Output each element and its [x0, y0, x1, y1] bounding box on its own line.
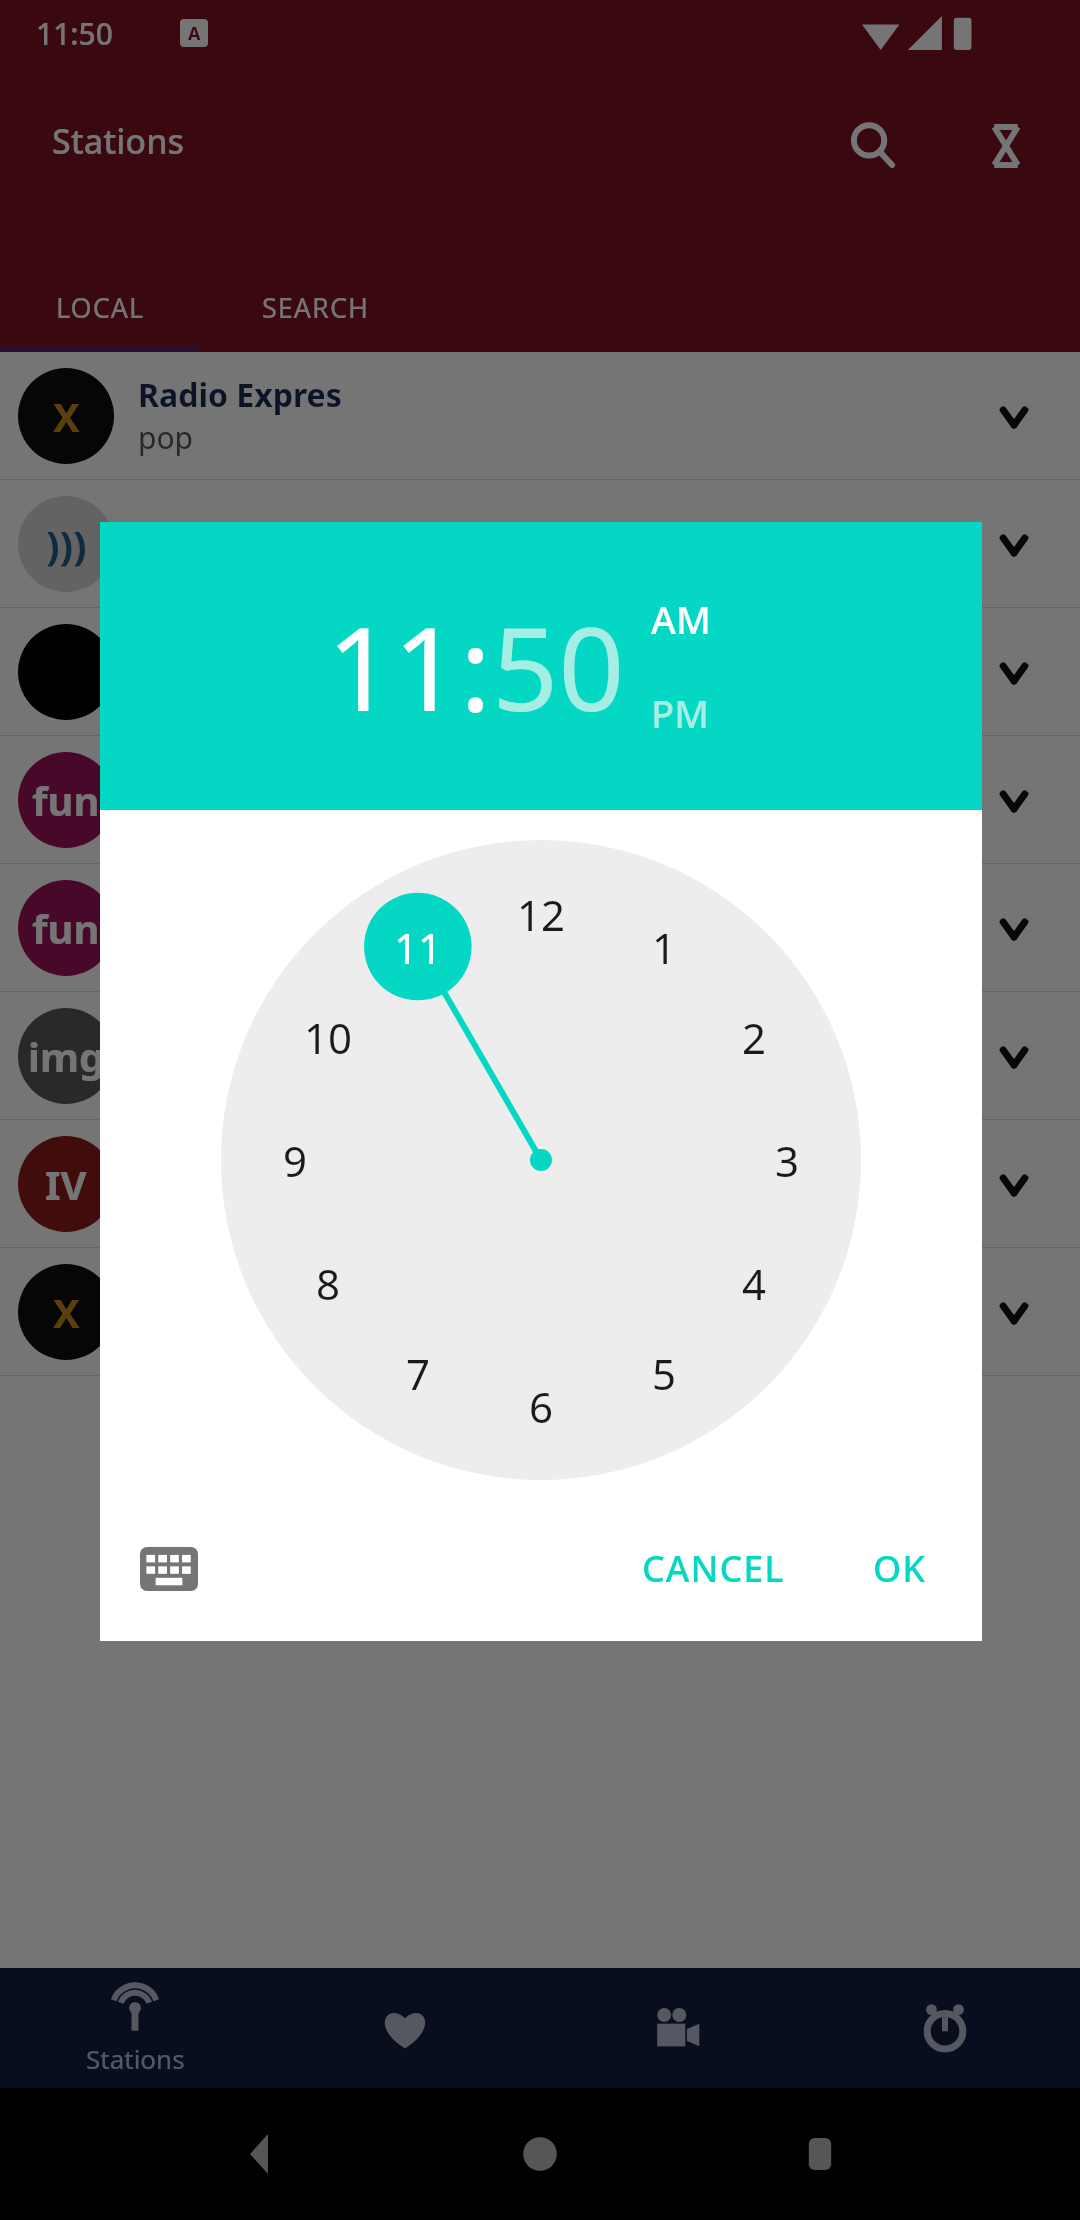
button[interactable] — [0, 608, 1080, 735]
staticText: ))) — [46, 517, 87, 571]
staticText: 4 — [742, 1255, 767, 1312]
staticText: 11:50 — [36, 13, 113, 54]
button[interactable]: 50 — [492, 587, 625, 745]
staticText: X — [53, 389, 80, 443]
button[interactable]: Search — [845, 118, 901, 174]
button[interactable]: 10 — [278, 987, 378, 1087]
button[interactable]: ))) — [0, 480, 1080, 607]
button[interactable]: Alarm — [810, 1968, 1080, 2088]
button[interactable]: LOCAL — [0, 262, 200, 352]
button[interactable]: Recents — [800, 2134, 840, 2174]
staticText: 5 — [652, 1345, 677, 1402]
staticText: 12 — [517, 886, 566, 943]
button[interactable]: 1 — [614, 897, 714, 997]
button[interactable]: 11 — [368, 897, 468, 997]
staticText: Stations — [52, 118, 184, 164]
staticText: Radio Expres — [138, 373, 342, 417]
button[interactable]: img — [0, 992, 1080, 1119]
staticText: IV — [45, 1157, 87, 1211]
staticText: INFOVOJNA — [138, 1141, 324, 1185]
staticText: PM — [651, 687, 710, 739]
button[interactable]: SEARCH — [200, 262, 430, 352]
button[interactable]: Back — [240, 2134, 280, 2174]
button[interactable]: AM — [651, 593, 711, 645]
staticText: X — [53, 1285, 80, 1339]
button[interactable]: Home — [520, 2134, 560, 2174]
button[interactable]: X — [0, 352, 1080, 479]
button[interactable]: 3 — [737, 1110, 837, 1210]
button[interactable]: Switch to text input — [134, 1534, 204, 1604]
staticText: 1 — [652, 919, 677, 976]
staticText: pop — [138, 417, 194, 458]
button[interactable]: 5 — [614, 1323, 714, 1423]
staticText: : — [460, 587, 492, 745]
button[interactable]: X — [0, 1248, 1080, 1375]
button[interactable]: Sleep timer — [978, 118, 1034, 174]
button[interactable]: 12 — [491, 864, 591, 964]
button[interactable]: fun — [0, 864, 1080, 991]
button[interactable]: Stations — [0, 1968, 270, 2088]
button[interactable]: 9 — [245, 1110, 345, 1210]
staticText: 10 — [304, 1009, 353, 1066]
staticText: AM — [651, 593, 711, 645]
button[interactable]: PM — [651, 687, 710, 739]
staticText: Radio Expres — [138, 1269, 342, 1313]
staticText: 9 — [283, 1132, 308, 1189]
button[interactable]: Recordings — [540, 1968, 810, 2088]
staticText: CANCEL — [642, 1544, 785, 1593]
staticText: 11 — [327, 587, 460, 745]
staticText: LOCAL — [56, 289, 145, 326]
staticText: fun — [32, 773, 100, 827]
staticText: 2 — [742, 1009, 767, 1066]
button[interactable]: CANCEL — [620, 1530, 807, 1607]
staticText: 7 — [406, 1345, 431, 1402]
button[interactable]: Favorites — [270, 1968, 540, 2088]
button[interactable]: 4 — [704, 1233, 804, 1333]
staticText: fun — [32, 901, 100, 955]
button[interactable]: OK — [851, 1530, 948, 1607]
staticText: 6 — [529, 1378, 554, 1435]
staticText: A — [188, 21, 201, 46]
staticText: 50 — [492, 587, 625, 745]
button[interactable]: 11 — [327, 587, 460, 745]
staticText: 11 — [394, 919, 443, 976]
staticText: KAMRAD - I BELIEVE — [138, 1313, 420, 1354]
staticText: 8 — [316, 1255, 341, 1312]
button[interactable]: 7 — [368, 1323, 468, 1423]
staticText: Stations — [86, 2041, 185, 2076]
staticText: img — [28, 1029, 105, 1083]
staticText: 3 — [775, 1132, 800, 1189]
button[interactable]: 8 — [278, 1233, 378, 1333]
button[interactable]: IV — [0, 1120, 1080, 1247]
button[interactable]: fun — [0, 736, 1080, 863]
button[interactable]: 2 — [704, 987, 804, 1087]
button[interactable]: 6 — [491, 1356, 591, 1456]
staticText: OK — [873, 1544, 926, 1593]
staticText: SEARCH — [262, 289, 369, 326]
